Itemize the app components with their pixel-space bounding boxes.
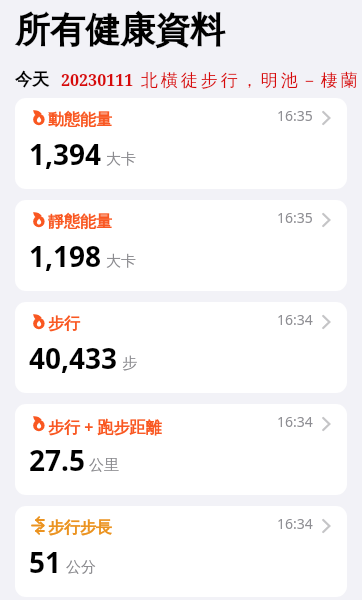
staticText: 大卡 xyxy=(106,252,136,271)
staticText: 20230111 北橫徒步行，明池－棲蘭 xyxy=(61,68,361,91)
staticText: 51 xyxy=(29,543,62,581)
staticText: 1,394 xyxy=(29,135,102,173)
staticText: 16:35 xyxy=(277,208,313,227)
staticText: 16:34 xyxy=(277,310,313,329)
staticText: 所有健康資料 xyxy=(15,8,225,52)
button[interactable]: 步行步長 xyxy=(15,506,347,597)
staticText: 16:35 xyxy=(277,106,313,125)
button[interactable]: 動態能量 xyxy=(15,98,347,189)
staticText: 今天 xyxy=(15,69,49,90)
button[interactable]: 步行 + 跑步距離 xyxy=(15,404,347,495)
staticText: 40,433 xyxy=(29,339,118,377)
staticText: 步行 + 跑步距離 xyxy=(48,416,162,438)
staticText: 大卡 xyxy=(106,150,136,169)
button[interactable]: 靜態能量 xyxy=(15,200,347,291)
staticText: 公里 xyxy=(89,456,119,475)
staticText: 1,198 xyxy=(29,237,102,275)
staticText: 16:34 xyxy=(277,514,313,533)
staticText: 步行步長 xyxy=(48,518,112,538)
staticText: 16:34 xyxy=(277,412,313,431)
staticText: 步 xyxy=(122,354,137,373)
staticText: 靜態能量 xyxy=(48,212,112,232)
staticText: 27.5 xyxy=(29,441,85,479)
button[interactable]: 步行 xyxy=(15,302,347,393)
staticText: 步行 xyxy=(48,314,80,334)
staticText: 公分 xyxy=(66,558,96,577)
staticText: 動態能量 xyxy=(48,110,112,130)
